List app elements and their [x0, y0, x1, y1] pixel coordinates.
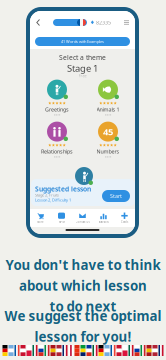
staticText: 45 — [103, 125, 113, 138]
staticText: Suggested lesson — [35, 185, 91, 193]
staticText: 88% — [54, 113, 60, 116]
staticText: 82335 — [96, 19, 111, 26]
staticText: Select a theme — [59, 53, 106, 62]
staticText: Start — [110, 192, 122, 200]
staticText: WPM — [58, 220, 64, 224]
staticText: Stage 2, Fruits — [35, 192, 59, 198]
staticText: Lesson 2, Difficulty 1 — [35, 197, 71, 203]
button[interactable]: Store — [30, 209, 51, 227]
staticText: Animals 1 — [96, 106, 119, 113]
button[interactable]: 45 — [83, 120, 133, 160]
staticText: Greetings — [45, 106, 69, 113]
staticText: Store — [37, 220, 44, 224]
staticText: Statistics — [98, 220, 108, 224]
button[interactable]: Language progress — [53, 19, 87, 26]
button[interactable]: 41 Words with Examples — [35, 37, 130, 46]
button[interactable]: Suggested lesson — [31, 179, 135, 206]
staticText: You don't have to think — [5, 256, 160, 274]
button[interactable]: Statistics — [93, 209, 114, 227]
button[interactable]: Contact us — [72, 209, 93, 227]
staticText: 88% — [54, 155, 60, 158]
staticText: Numbers — [96, 148, 119, 155]
staticText: ♦ — [90, 19, 95, 26]
staticText: Cards — [121, 220, 128, 224]
staticText: Stage 1 — [67, 62, 98, 74]
button[interactable]: Relationships — [32, 120, 82, 160]
staticText: 41 Words with Examples — [61, 39, 104, 44]
button[interactable]: Cards — [114, 209, 135, 227]
staticText: 88% — [105, 113, 111, 116]
button[interactable]: Greetings — [32, 78, 82, 118]
staticText: Free — [78, 73, 86, 78]
button[interactable]: Menu — [122, 18, 131, 27]
staticText: We suggest the optimal — [4, 307, 161, 325]
staticText: Relationships — [41, 148, 73, 155]
staticText: about which lesson — [19, 277, 147, 294]
button[interactable]: WPM — [51, 209, 72, 227]
staticText: to do next — [49, 297, 116, 315]
staticText: lesson for you! — [34, 328, 131, 345]
staticText: 88% — [105, 155, 111, 158]
button[interactable]: Back — [34, 17, 42, 28]
staticText: Contact us — [75, 220, 89, 224]
button[interactable]: Animals 1 — [83, 78, 133, 118]
